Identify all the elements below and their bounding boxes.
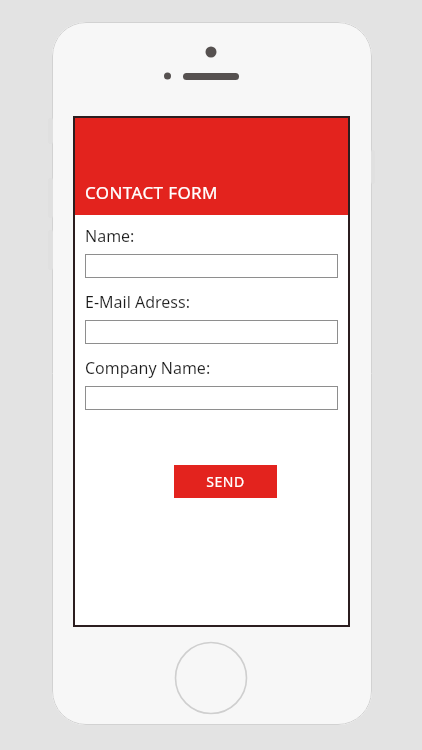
staticText: Name: — [85, 225, 135, 247]
staticText: E-Mail Adress: — [85, 291, 190, 313]
staticText: SEND — [206, 472, 245, 491]
button[interactable]: Home — [175, 642, 247, 714]
button[interactable]: SEND — [174, 465, 277, 498]
button[interactable]: Text input field — [85, 254, 338, 278]
staticText: Company Name: — [85, 357, 211, 379]
button[interactable]: Text input field — [85, 320, 338, 344]
staticText: CONTACT FORM — [85, 181, 218, 204]
button[interactable]: Text input field — [85, 386, 338, 410]
